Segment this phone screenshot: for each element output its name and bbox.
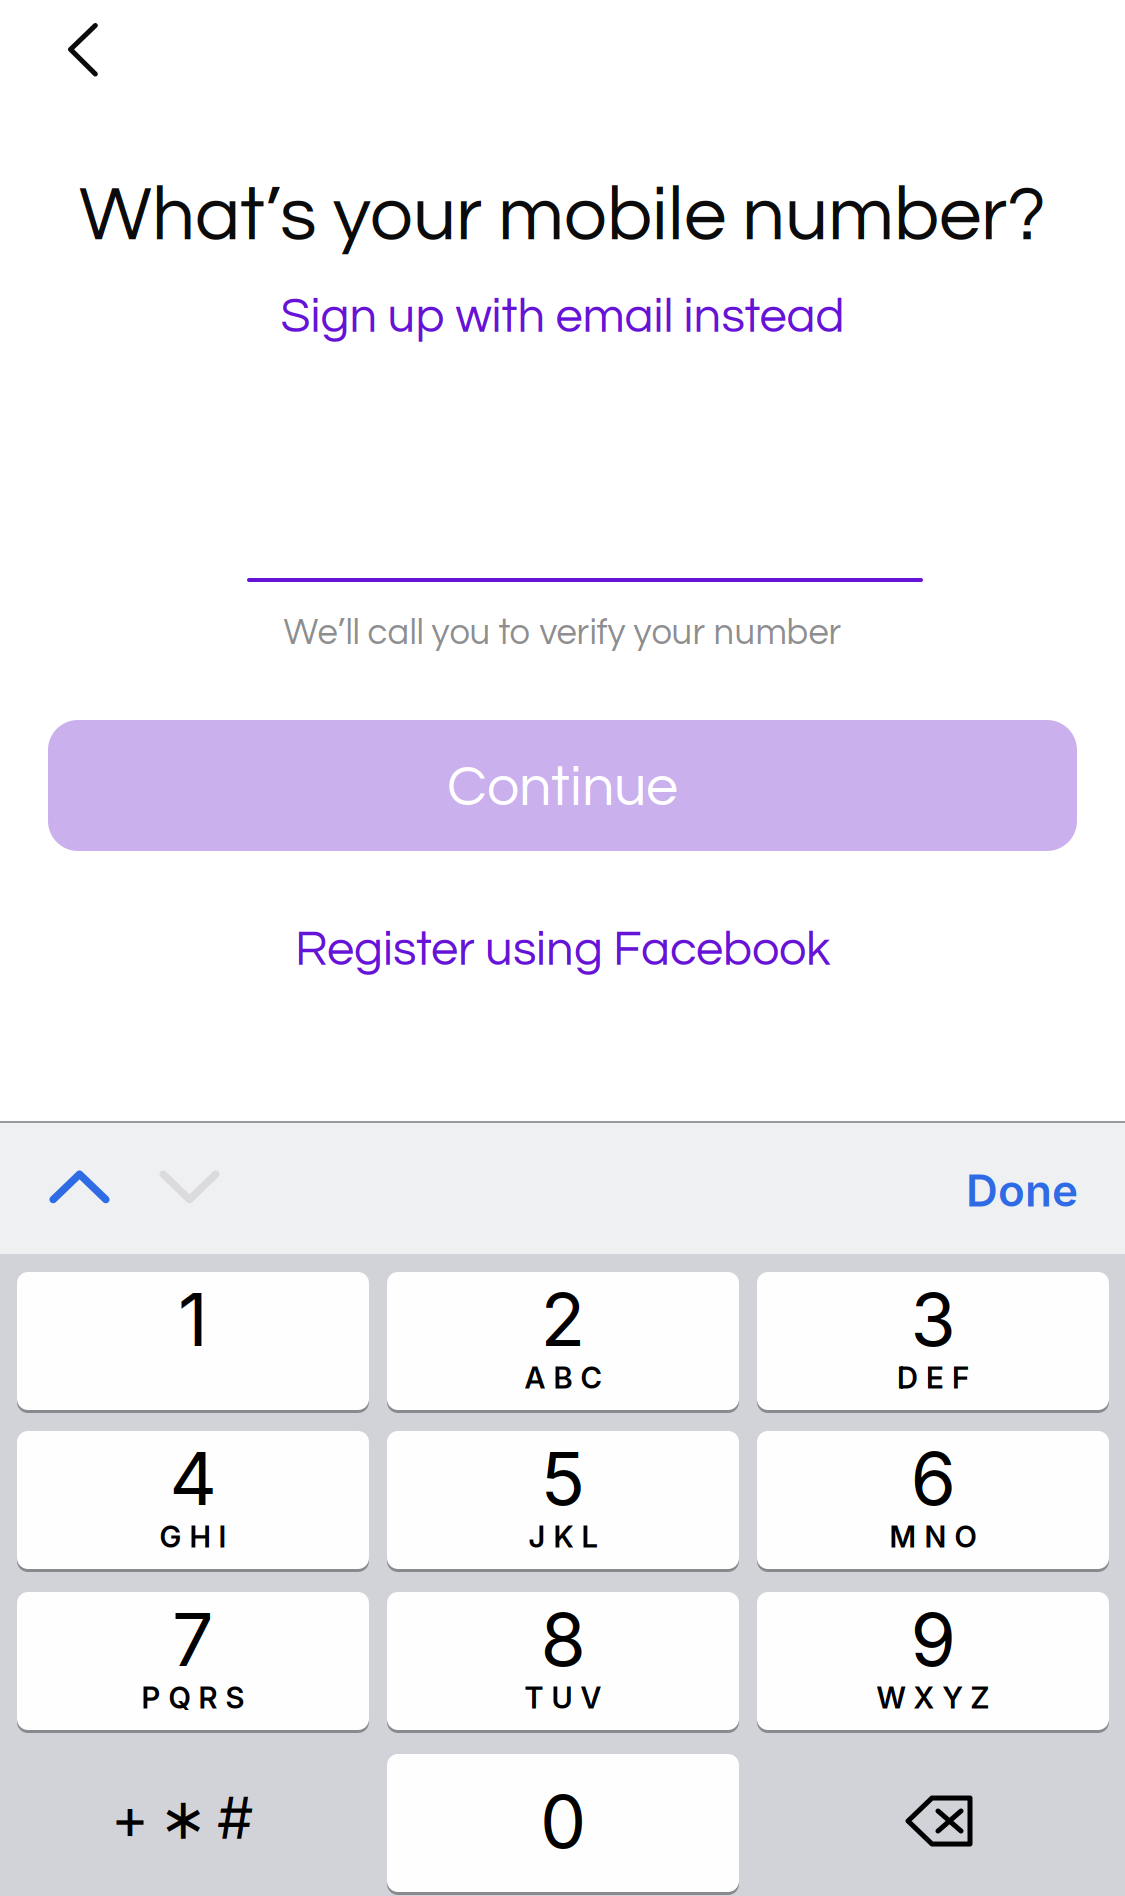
button[interactable]: Done [932,1121,1112,1254]
button[interactable]: 2 [387,1272,739,1413]
staticText: Continue [447,758,678,817]
staticText: We’ll call you to verify your number [283,614,841,652]
staticText: 6 [910,1434,955,1523]
button[interactable]: 9 [757,1592,1109,1733]
staticText: 7 [172,1595,214,1684]
button[interactable]: Delete [757,1754,1109,1892]
staticText: D E F [897,1360,969,1395]
button[interactable]: Previous [0,1121,142,1216]
button[interactable]: Next [127,1121,252,1216]
staticText: M N O [889,1519,976,1554]
button[interactable]: 5 [387,1431,739,1572]
button[interactable]: 6 [757,1431,1109,1572]
staticText: Register using Facebook [295,925,830,975]
staticText: A B C [524,1360,601,1395]
staticText: Sign up with email instead [280,292,844,342]
button[interactable]: 8 [387,1592,739,1733]
staticText: Done [966,1164,1078,1217]
staticText: J K L [528,1519,597,1554]
button[interactable]: 0 [387,1754,739,1895]
staticText: 4 [169,1434,216,1523]
staticText: 0 [540,1777,586,1866]
button[interactable]: 4 [17,1431,369,1572]
staticText: 2 [540,1275,585,1364]
staticText: W X Y Z [876,1680,989,1715]
button[interactable]: 1 [17,1272,369,1413]
staticText: 1 [178,1275,208,1364]
button[interactable]: 7 [17,1592,369,1733]
staticText: 9 [910,1595,955,1684]
staticText: T U V [524,1680,601,1715]
staticText: 3 [910,1275,955,1364]
staticText: What’s your mobile number? [79,177,1046,255]
staticText: P Q R S [141,1680,244,1715]
button[interactable]: Back [46,0,120,100]
button[interactable]: Sign up with email instead [0,288,1125,346]
staticText: 8 [540,1595,585,1684]
button[interactable]: Continue [48,720,1077,851]
button[interactable]: Register using Facebook [0,922,1125,978]
staticText: 5 [540,1434,585,1523]
button[interactable]: 3 [757,1272,1109,1413]
staticText: G H I [159,1519,226,1554]
button[interactable]: Symbols [17,1754,369,1892]
staticText: + ∗ # [111,1783,253,1853]
